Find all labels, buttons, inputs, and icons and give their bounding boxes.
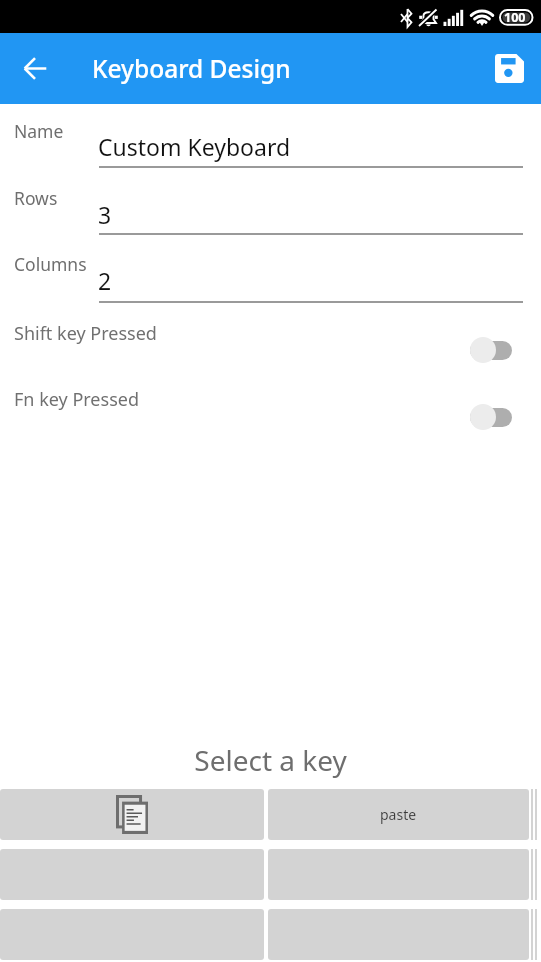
- staticText: Keyboard Design: [92, 52, 291, 85]
- button[interactable]: Back: [13, 46, 58, 91]
- staticText: 100: [504, 9, 526, 26]
- staticText: Select a key: [0, 741, 541, 779]
- staticText: Shift key Pressed: [14, 321, 157, 346]
- staticText: Custom Keyboard: [98, 131, 291, 162]
- button[interactable]: paste: [268, 789, 529, 840]
- button[interactable]: [0, 789, 264, 840]
- staticText: Rows: [14, 186, 58, 210]
- button[interactable]: Shift key Pressed: [0, 322, 541, 378]
- button[interactable]: Columns: [98, 259, 523, 303]
- staticText: Fn key Pressed: [14, 387, 139, 412]
- staticText: Columns: [14, 252, 87, 276]
- staticText: 2: [98, 265, 112, 296]
- button[interactable]: Name: [98, 125, 523, 168]
- button[interactable]: Fn key Pressed: [0, 389, 541, 445]
- button[interactable]: Rows: [98, 193, 523, 235]
- staticText: 3: [98, 199, 112, 230]
- staticText: paste: [380, 805, 417, 824]
- button[interactable]: Save: [487, 46, 531, 90]
- staticText: Name: [14, 119, 64, 143]
